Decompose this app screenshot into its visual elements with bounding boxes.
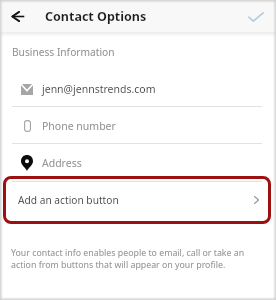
staticText: Your contact info enables people to emai…	[11, 247, 251, 270]
staticText: Add an action button	[18, 193, 119, 207]
button[interactable]: Address	[0, 145, 276, 181]
button[interactable]: Phone number	[0, 108, 276, 144]
button[interactable]: Back	[5, 4, 30, 29]
staticText: Phone number	[42, 119, 116, 133]
button[interactable]: Done	[243, 4, 269, 30]
staticText: Business Information	[12, 45, 115, 59]
staticText: jenn@jennstrends.com	[42, 82, 156, 96]
button[interactable]: jenn@jennstrends.com	[0, 71, 276, 107]
staticText: Contact Options	[45, 8, 147, 25]
button[interactable]: Add an action button	[3, 176, 271, 224]
staticText: Address	[42, 156, 82, 170]
